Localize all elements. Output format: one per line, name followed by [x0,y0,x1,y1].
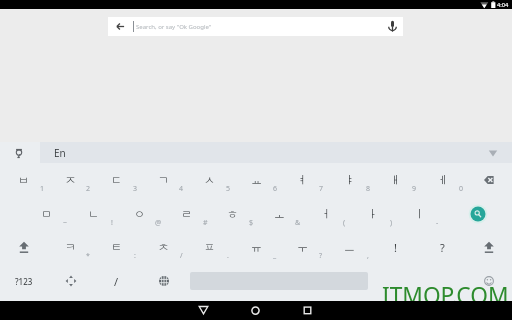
button[interactable]: ㅍ [186,230,233,264]
staticText: Search, or say "Ok Google" [136,23,256,31]
staticText: ㅎ [227,207,238,221]
button[interactable]: Change language [140,264,187,298]
staticText: ㅇ [134,207,145,221]
staticText: ( [343,218,346,228]
staticText: , [367,251,369,261]
staticText: ?123 [15,276,33,287]
staticText: ㅣ [414,207,425,221]
button[interactable]: ㅣ [396,197,443,231]
button[interactable]: ! [372,230,419,264]
button[interactable]: ㄱ [140,163,187,197]
staticText: : [134,251,136,261]
button[interactable]: ㅋ [47,230,94,264]
button[interactable]: ㅛ [233,163,280,197]
button[interactable]: En [40,142,512,163]
button[interactable]: ㅈ [47,163,94,197]
staticText: ㅑ [344,173,355,187]
button[interactable]: ㅗ [256,197,303,231]
staticText: & [295,218,301,228]
button[interactable]: ㅎ [209,197,256,231]
staticText: ㅗ [274,207,285,221]
button[interactable]: ㅠ [233,230,280,264]
staticText: ㅁ [41,207,52,221]
staticText: 4:04 [497,1,509,9]
button[interactable]: ㄹ [163,197,210,231]
staticText: ㅅ [204,173,215,187]
button[interactable]: Search [454,197,501,231]
button[interactable]: / [93,264,140,298]
button[interactable]: ㅔ [419,163,466,197]
staticText: ! [111,218,113,228]
staticText: ㅛ [251,173,262,187]
staticText: ~ [63,218,68,228]
button[interactable]: ㅜ [279,230,326,264]
staticText: ㅋ [65,240,76,254]
button[interactable]: ㅇ [116,197,163,231]
staticText: 6 [273,184,278,194]
staticText: ㄷ [111,173,122,187]
button[interactable]: Emoji [465,264,512,298]
staticText: ㅓ [321,207,332,221]
staticText: 8 [366,184,371,194]
button[interactable]: Move cursor [47,264,94,298]
button[interactable]: ㅡ [326,230,373,264]
staticText: * [86,251,90,261]
button[interactable]: ㅂ [0,163,47,197]
button[interactable]: ㅊ [140,230,187,264]
staticText: ! [394,240,397,255]
staticText: ㅂ [18,173,29,187]
staticText: En [54,146,66,160]
staticText: 9 [412,184,417,194]
button[interactable]: ㄷ [93,163,140,197]
button[interactable]: ㅁ [23,197,70,231]
staticText: ㄱ [158,173,169,187]
staticText: / [114,274,119,289]
button[interactable]: ㅑ [326,163,373,197]
staticText: ? [319,251,323,261]
button[interactable]: Shift [0,230,47,264]
staticText: $ [249,218,254,228]
staticText: # [203,218,208,228]
button[interactable]: ?123 [0,264,47,298]
button[interactable]: ㅌ [93,230,140,264]
staticText: ㅡ [344,240,355,254]
staticText: ㅊ [158,240,169,254]
staticText: ㄹ [181,207,192,221]
staticText: - [436,218,439,228]
staticText: ) [390,218,393,228]
staticText: . [227,251,229,261]
staticText: 4 [179,184,184,194]
button[interactable]: ? [419,230,466,264]
button[interactable]: Search, or say "Ok Google" [108,17,403,36]
staticText: ㅐ [390,173,401,187]
button[interactable]: ㅕ [279,163,326,197]
staticText: ㅈ [65,173,76,187]
staticText: / [180,251,183,261]
staticText: 2 [86,184,91,194]
staticText: ㅏ [367,207,378,221]
button[interactable]: Backspace [465,163,512,197]
staticText: @ [155,218,162,228]
button[interactable]: Suggestions [8,142,29,163]
staticText: ? [440,240,445,255]
button[interactable]: ㅓ [303,197,350,231]
button[interactable]: ㅏ [349,197,396,231]
button[interactable]: More suggestions [482,142,503,163]
staticText: 1 [40,184,45,194]
staticText: 3 [133,184,138,194]
button[interactable]: ㅐ [372,163,419,197]
staticText: ㅔ [437,173,448,187]
staticText: ㅌ [111,240,122,254]
staticText: ㄴ [88,207,99,221]
button[interactable]: ㄴ [70,197,117,231]
staticText: ITMOP.COM [382,280,512,311]
staticText: 0 [459,184,464,194]
staticText: _ [273,251,277,261]
staticText: ㅕ [297,173,308,187]
staticText: 5 [226,184,231,194]
button[interactable]: Shift [465,230,512,264]
staticText: ㅜ [297,240,308,254]
button[interactable]: ㅅ [186,163,233,197]
staticText: ㅠ [251,240,262,254]
